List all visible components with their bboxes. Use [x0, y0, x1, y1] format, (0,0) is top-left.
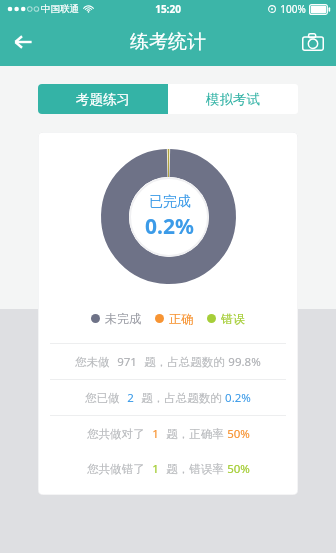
staticText: 您未做: [75, 355, 110, 369]
button[interactable]: 考题练习: [38, 84, 168, 114]
staticText: 0.2%: [225, 390, 251, 406]
staticText: 1: [152, 426, 159, 442]
staticText: 题，占总题数的: [141, 391, 222, 405]
staticText: 模拟考试: [206, 91, 260, 108]
staticText: 15:20: [155, 2, 181, 16]
button[interactable]: Camera: [290, 19, 336, 65]
staticText: 练考统计: [130, 30, 206, 54]
staticText: 中国联通: [41, 3, 79, 15]
staticText: 0.2%: [145, 212, 194, 241]
staticText: 考题练习: [76, 91, 130, 108]
staticText: 100%: [280, 2, 306, 16]
staticText: 971: [117, 354, 137, 370]
button[interactable]: Back: [0, 19, 46, 65]
staticText: 2: [127, 390, 134, 406]
staticText: 50%: [227, 426, 250, 442]
staticText: 未完成: [105, 311, 141, 326]
staticText: 您共做对了: [87, 427, 145, 441]
staticText: 99.8%: [228, 354, 261, 370]
staticText: 已完成: [149, 193, 191, 211]
staticText: 正确: [169, 311, 193, 326]
staticText: 错误: [221, 311, 245, 326]
button[interactable]: 模拟考试: [168, 84, 298, 114]
staticText: 50%: [227, 461, 250, 477]
staticText: 题，错误率: [166, 462, 224, 476]
staticText: 题，正确率: [166, 427, 224, 441]
staticText: 您共做错了: [87, 462, 145, 476]
staticText: 题，占总题数的: [144, 355, 225, 369]
staticText: 您已做: [85, 391, 120, 405]
staticText: 1: [152, 461, 159, 477]
